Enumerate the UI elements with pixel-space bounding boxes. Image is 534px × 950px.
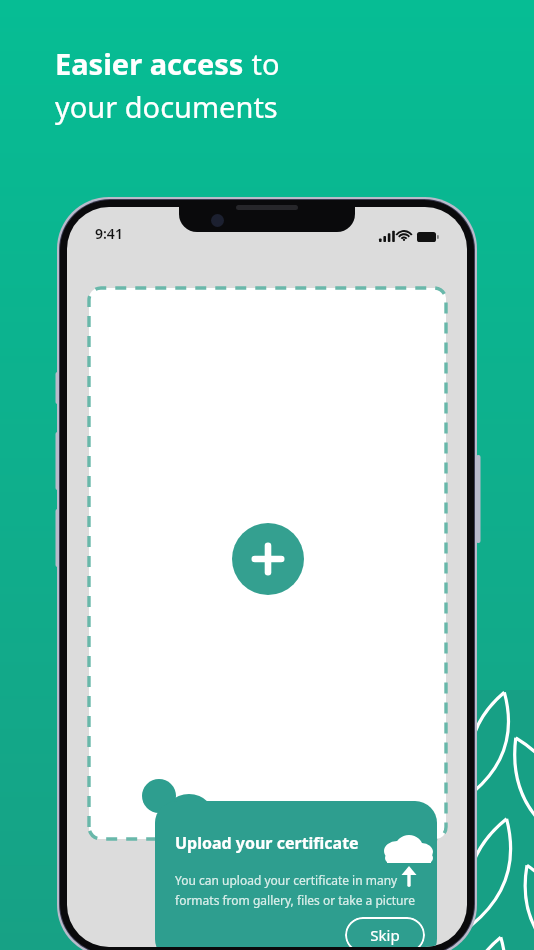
- staticText: Easier access: [55, 44, 244, 83]
- button[interactable]: Upload your certificate: [155, 801, 437, 947]
- staticText: your documents: [55, 87, 278, 126]
- button[interactable]: Add document: [232, 523, 304, 595]
- button[interactable]: Skip: [345, 917, 425, 947]
- staticText: You can upload your certificate in many …: [175, 872, 419, 909]
- staticText: Upload your certificate: [175, 832, 359, 854]
- staticText: Skip: [370, 925, 400, 945]
- staticText: to: [244, 44, 280, 83]
- staticText: 9:41: [95, 224, 123, 243]
